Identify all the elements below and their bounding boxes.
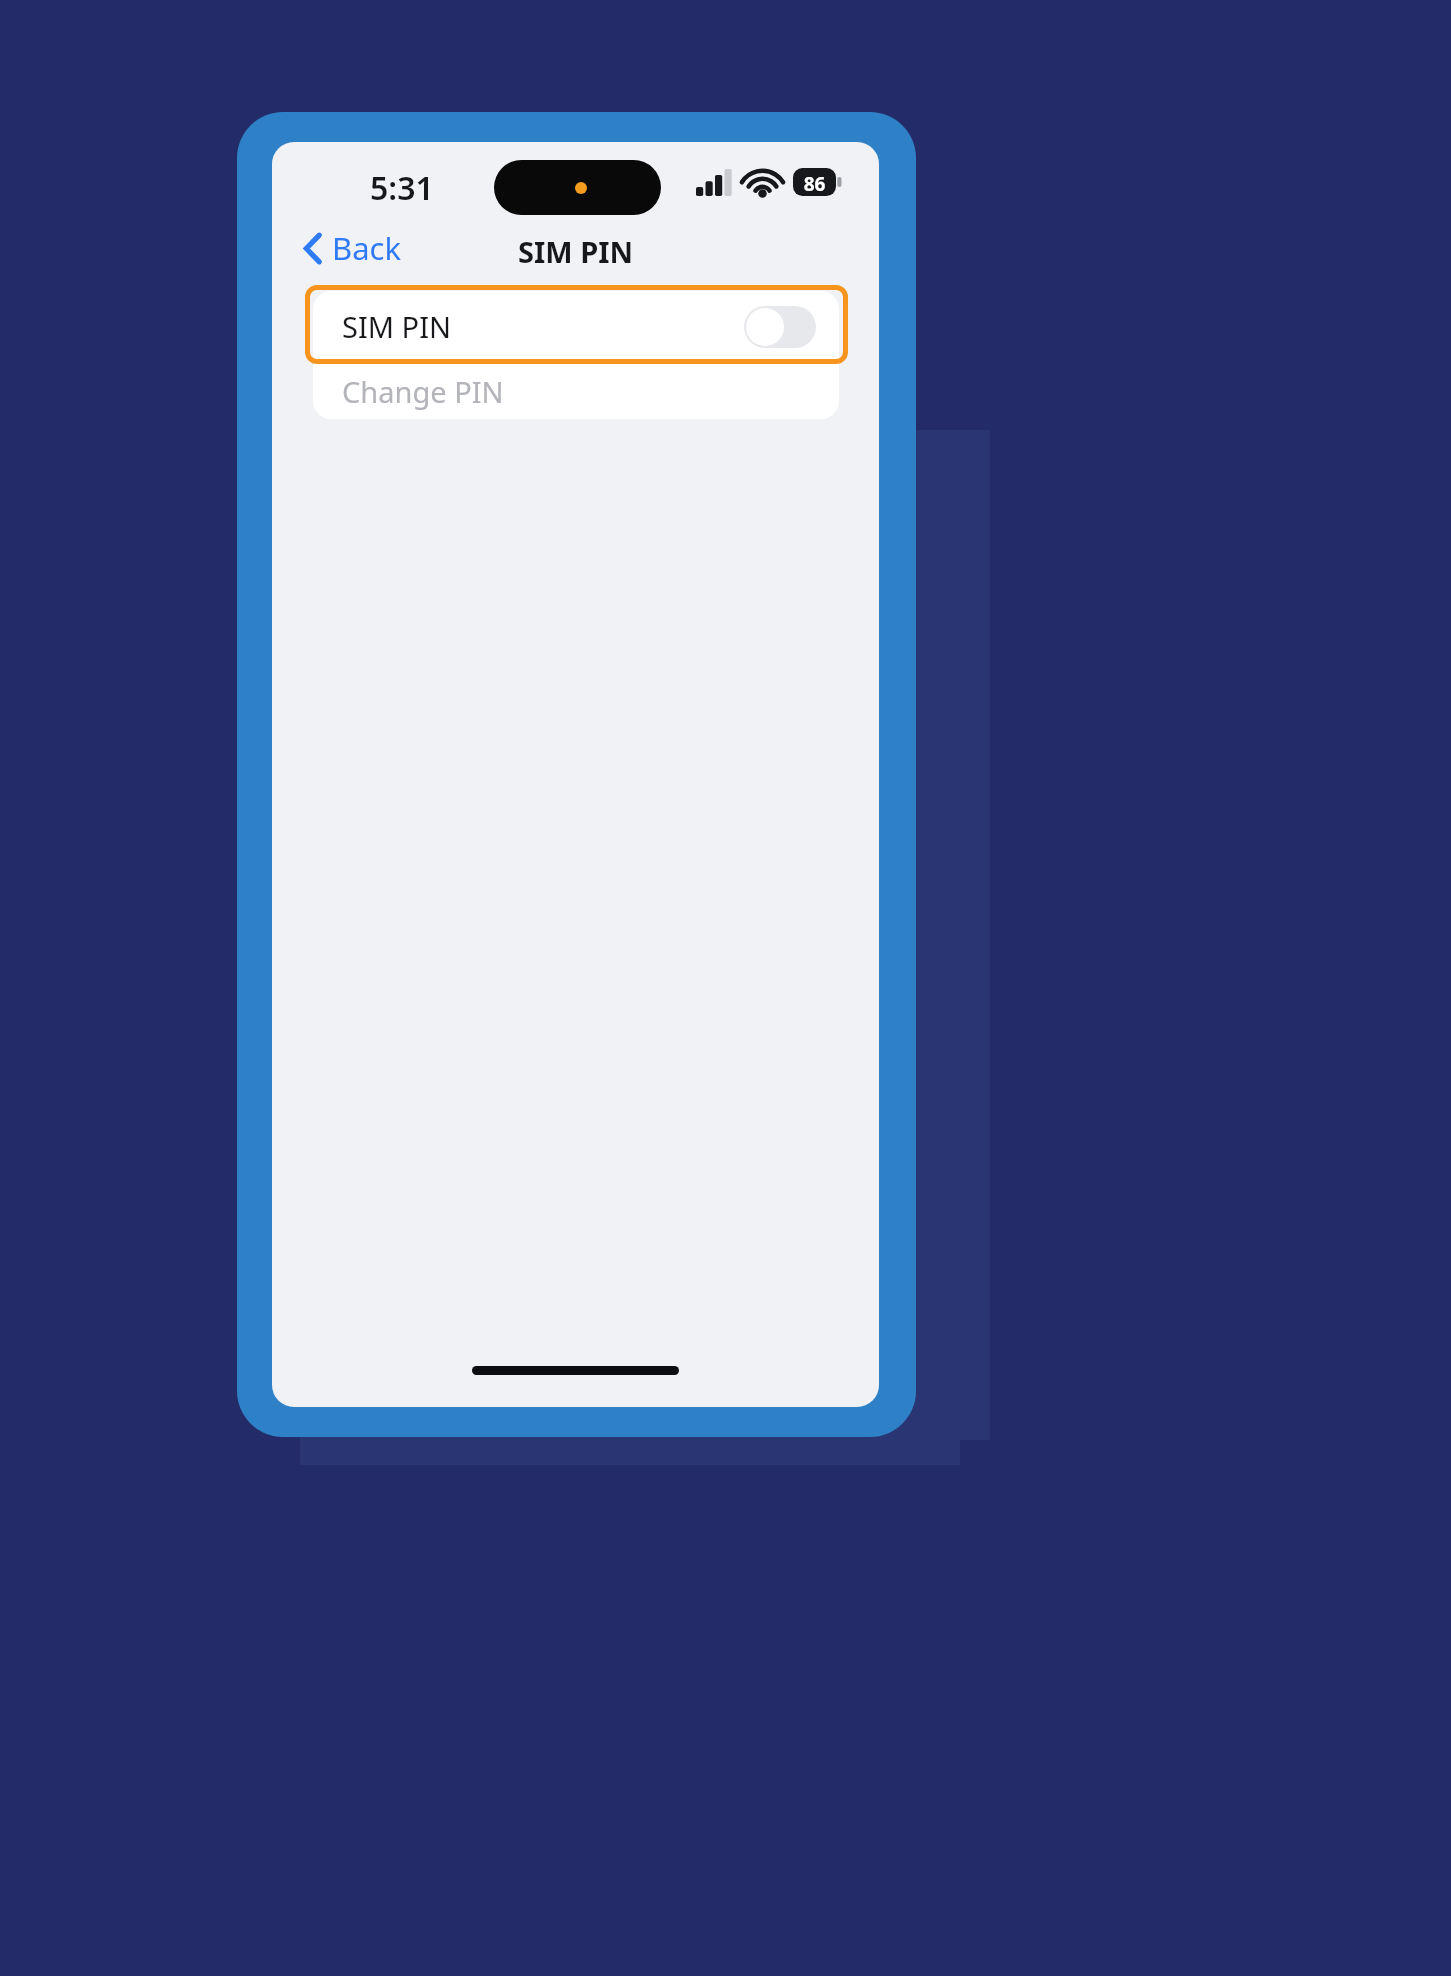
staticText: 5:31 bbox=[370, 166, 434, 210]
staticText: Change PIN bbox=[342, 372, 504, 411]
button[interactable]: Change PIN bbox=[313, 363, 839, 419]
staticText: 86 bbox=[793, 171, 836, 197]
button[interactable]: SIM PIN bbox=[313, 291, 839, 362]
staticText: SIM PIN bbox=[342, 307, 452, 346]
button[interactable]: SIM PIN, off bbox=[744, 306, 816, 348]
button[interactable]: Back bbox=[294, 222, 411, 274]
staticText: SIM PIN bbox=[518, 232, 634, 271]
staticText: Back bbox=[332, 227, 401, 269]
